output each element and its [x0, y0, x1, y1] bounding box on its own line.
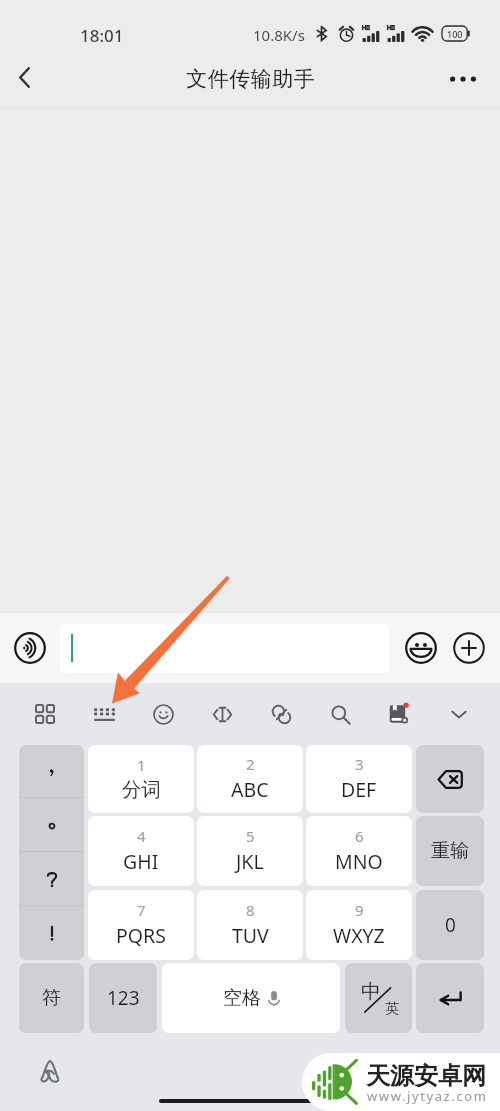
button[interactable]: 3	[306, 745, 412, 813]
button[interactable]: 中	[345, 963, 412, 1033]
staticText: 符	[42, 986, 61, 1010]
staticText: 空格	[223, 986, 261, 1010]
staticText: DEF	[341, 776, 377, 803]
button[interactable]: 重输	[416, 816, 484, 886]
button[interactable]: 0	[416, 890, 484, 960]
staticText: 123	[107, 985, 140, 1011]
staticText: TUV	[232, 922, 269, 949]
staticText: 英	[385, 1000, 399, 1018]
staticText: 8	[246, 900, 255, 920]
button[interactable]: Comma	[19, 745, 84, 798]
button[interactable]: Enter	[416, 963, 484, 1033]
button[interactable]: 4	[88, 816, 194, 886]
button[interactable]: 5	[197, 816, 303, 886]
button[interactable]: Emoji	[402, 630, 439, 667]
button[interactable]: Back	[2, 54, 48, 100]
button[interactable]: Emoji	[141, 692, 185, 736]
other: Sogou input	[38, 1059, 62, 1081]
staticText: 10.8K/s	[253, 25, 305, 45]
staticText: ABC	[231, 776, 269, 803]
staticText: www.jytyaz.com	[367, 1087, 488, 1105]
staticText: 天源安卓网	[366, 1061, 486, 1091]
button[interactable]: Exclamation mark	[19, 906, 84, 960]
staticText: 重输	[431, 839, 469, 863]
button[interactable]: 符	[19, 963, 84, 1033]
staticText: 7	[137, 900, 146, 920]
staticText: GHI	[123, 848, 159, 875]
staticText: MNO	[335, 848, 383, 875]
button[interactable]: Backspace	[416, 745, 484, 813]
staticText: 分词	[122, 777, 161, 802]
button[interactable]: 123	[89, 963, 157, 1033]
button[interactable]: 空格	[162, 963, 340, 1033]
button[interactable]: Search	[318, 692, 362, 736]
staticText: 6	[355, 826, 364, 846]
staticText: 4	[137, 826, 146, 846]
button[interactable]: Clipboard	[259, 692, 303, 736]
button[interactable]: 6	[306, 816, 412, 886]
staticText: 文件传输助手	[186, 66, 315, 92]
button[interactable]: Keyboard layout	[82, 692, 126, 736]
staticText: JKL	[236, 848, 264, 875]
button[interactable]: 7	[88, 890, 194, 960]
button[interactable]: Add attachment	[450, 630, 487, 667]
button[interactable]: Voice input	[11, 630, 48, 667]
button[interactable]: 2	[197, 745, 303, 813]
button[interactable]: Text editing	[200, 692, 244, 736]
staticText: 3	[355, 754, 364, 774]
staticText: 100	[447, 28, 463, 40]
button[interactable]	[60, 624, 389, 673]
button[interactable]: Period	[19, 798, 84, 852]
staticText: 中	[361, 979, 381, 1004]
staticText: 18:01	[80, 24, 124, 47]
button[interactable]: 1	[88, 745, 194, 813]
button[interactable]: Question mark	[19, 852, 84, 906]
staticText: 5	[246, 826, 255, 846]
button[interactable]: 8	[197, 890, 303, 960]
staticText: 9	[355, 900, 364, 920]
staticText: 2	[246, 754, 255, 774]
button[interactable]: Dictionary	[377, 692, 421, 736]
staticText: 0	[445, 912, 456, 938]
button[interactable]: Hide keyboard	[437, 692, 481, 736]
staticText: WXYZ	[333, 922, 385, 949]
staticText: PQRS	[116, 922, 166, 949]
button[interactable]: Input methods	[23, 692, 67, 736]
staticText: 1	[137, 755, 146, 775]
button[interactable]: More options	[437, 55, 493, 105]
button[interactable]: 9	[306, 890, 412, 960]
